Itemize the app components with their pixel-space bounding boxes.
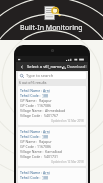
staticText: Village Name : xyxy=(20,149,45,154)
button[interactable]: Type to search xyxy=(18,72,86,79)
staticText: Village Code : xyxy=(20,113,44,118)
staticText: Tehsil Name : xyxy=(20,129,43,134)
button[interactable]: Tehsil Name : xyxy=(18,86,86,125)
staticText: 5401767 xyxy=(44,113,59,118)
staticText: Tehsil Name : xyxy=(20,88,43,93)
staticText: Type to search xyxy=(26,73,54,78)
staticText: Tehsil Code : xyxy=(20,93,42,98)
staticText: GP Name : xyxy=(20,98,39,103)
staticText: Village Name : xyxy=(20,108,45,113)
staticText: 188 xyxy=(42,134,49,139)
staticText: Download xyxy=(67,64,86,69)
staticText: Tehsil Code : xyxy=(20,175,42,180)
staticText: Tehsil Name : xyxy=(20,170,43,175)
button[interactable]: Tehsil Name : xyxy=(18,168,86,183)
staticText: Village Code : xyxy=(20,154,44,159)
button[interactable]: Back xyxy=(18,63,25,70)
staticText: Arni xyxy=(43,170,50,175)
staticText: GP Code : xyxy=(20,144,37,149)
button[interactable]: Download xyxy=(62,64,86,69)
staticText: 188 xyxy=(42,175,49,180)
other: Built-In Monitoring xyxy=(44,5,60,21)
staticText: Tehsil Code : xyxy=(20,134,42,139)
staticText: 1167086 xyxy=(37,144,52,149)
staticText: 5401731 xyxy=(44,154,59,159)
button[interactable]: Back xyxy=(16,62,88,71)
staticText: Updated on 12 Mar 2018 xyxy=(51,160,84,164)
staticText: Arni xyxy=(43,129,50,134)
staticText: Built-In Monitoring xyxy=(20,23,83,33)
staticText: GP Code : xyxy=(20,103,37,108)
staticText: Karnalbad xyxy=(45,149,62,154)
staticText: Updated on 12 Mar 2018 xyxy=(51,119,84,123)
staticText: Arni xyxy=(43,88,50,93)
staticText: 1167086 xyxy=(37,103,52,108)
staticText: 6 out of 6 results xyxy=(19,80,47,85)
staticText: Rajapur xyxy=(39,139,52,144)
staticText: GP Name : xyxy=(20,139,39,144)
staticText: Ahmedabad xyxy=(45,108,66,113)
staticText: 188 xyxy=(42,93,49,98)
button[interactable]: Tehsil Name : xyxy=(18,127,86,166)
staticText: Rajapur xyxy=(39,98,52,103)
staticText: Select a vill_name xyxy=(27,64,62,70)
